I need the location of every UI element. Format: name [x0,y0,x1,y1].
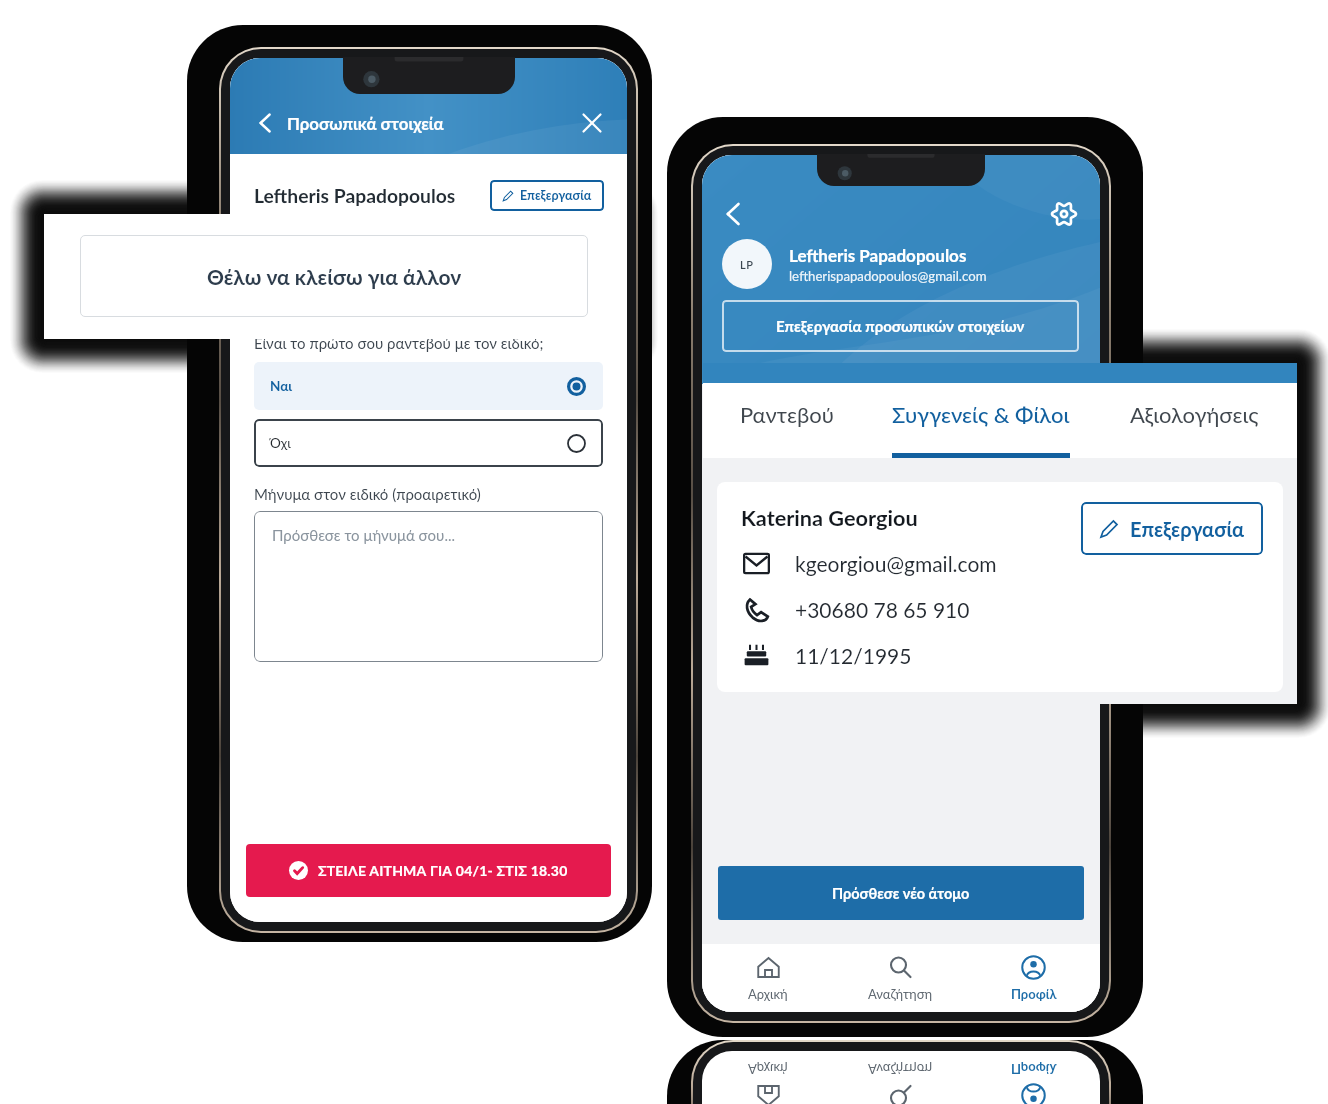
staticText: Leftheris Papadopoulos [789,245,967,265]
button[interactable]: Προφίλ [967,944,1100,1012]
button[interactable]: Αναζήτηση [834,1051,967,1104]
button[interactable]: Επεξεργασία [1081,502,1263,555]
button[interactable]: Πρόσθεσε νέο άτομο [718,866,1084,920]
staticText: Πρόσθεσε νέο άτομο [832,885,970,902]
button[interactable]: ΣΤΕΙΛΕ ΑΙΤΗΜΑ ΓΙΑ 04/1- ΣΤΙΣ 18.30 [246,844,611,897]
button[interactable]: Πρόσθεσε το μήνυμά σου... [254,511,603,662]
button[interactable]: Αρχική [702,944,834,1012]
button[interactable]: Επεξεργασία [490,180,604,211]
staticText: Katerina Georgiou [741,505,918,531]
staticText: Συγγενείς & Φίλοι [892,401,1070,427]
staticText: ΣΤΕΙΛΕ ΑΙΤΗΜΑ ΓΙΑ 04/1- ΣΤΙΣ 18.30 [318,862,568,879]
button[interactable]: Close [577,108,607,138]
button[interactable]: Back [718,199,748,229]
staticText: Αρχική [748,986,788,1002]
button[interactable]: Ναι [254,362,603,410]
staticText: Μήνυμα στον ειδικό (προαιρετικό) [254,485,481,503]
staticText: Αναζήτηση [868,1061,933,1077]
staticText: Προφίλ [1011,1061,1057,1077]
button[interactable]: Αξιολογήσεις [1091,383,1297,458]
button[interactable]: Επεξεργασία προσωπικών στοιχείων [722,300,1079,352]
staticText: Ραντεβού [740,401,834,427]
staticText: 11/12/1995 [795,643,912,668]
staticText: Πρόσθεσε το μήνυμά σου... [272,526,455,544]
staticText: leftherispapadopoulos@gmail.com [789,268,987,284]
button[interactable]: Συγγενείς & Φίλοι [871,383,1091,458]
button[interactable]: Back [250,108,280,138]
button[interactable]: Settings [1049,199,1079,229]
button[interactable]: Αναζήτηση [834,944,967,1012]
staticText: Θέλω να κλείσω για άλλον [207,264,462,289]
staticText: Είναι το πρώτο σου ραντεβού με τον ειδικ… [254,334,544,352]
button[interactable]: Όχι [254,419,603,467]
staticText: Επεξεργασία [520,188,592,203]
staticText: +30680 78 65 910 [795,597,970,622]
button[interactable]: Θέλω να κλείσω για άλλον [80,235,588,317]
staticText: Προφίλ [1011,986,1057,1002]
staticText: Αρχική [748,1061,788,1077]
staticText: Όχι [270,435,291,451]
button[interactable]: Προφίλ [967,1051,1100,1104]
staticText: Αναζήτηση [868,986,933,1002]
staticText: Προσωπικά στοιχεία [287,113,444,133]
button[interactable]: Αρχική [702,1051,834,1104]
staticText: Αξιολογήσεις [1130,401,1259,427]
staticText: LP [740,258,754,271]
staticText: Επεξεργασία προσωπικών στοιχείων [776,317,1025,335]
button[interactable]: Ραντεβού [703,383,871,458]
staticText: Ναι [270,378,293,394]
staticText: Leftheris Papadopoulos [254,184,456,207]
staticText: kgeorgiou@gmail.com [795,551,997,576]
staticText: Επεξεργασία [1130,517,1245,541]
